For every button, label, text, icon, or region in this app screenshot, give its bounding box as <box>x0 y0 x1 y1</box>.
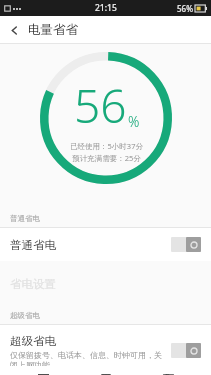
button[interactable]: Toggle <box>171 237 201 252</box>
staticText: 普通省电 <box>10 238 56 252</box>
staticText: 超级省电 <box>10 311 40 320</box>
staticText: 56 <box>74 74 127 137</box>
button[interactable]: Toggle <box>171 343 201 358</box>
button[interactable]: Back <box>0 16 28 44</box>
staticText: 21:15 <box>95 2 117 14</box>
staticText: 仅保留拨号、电话本、信息、时钟可用，关闭上网功能 <box>10 350 163 366</box>
staticText: 56% <box>177 3 193 14</box>
staticText: 普通省电 <box>10 214 40 223</box>
staticText: 电量省省 <box>28 22 78 38</box>
button[interactable]: 超级省电 <box>0 325 211 375</box>
staticText: 省电设置 <box>10 277 56 291</box>
button[interactable]: 普通省电 <box>0 228 211 261</box>
staticText: % <box>128 112 140 131</box>
staticText: 已经使用：5小时37分 <box>70 141 143 151</box>
staticText: 预计充满需要：25分 <box>72 153 141 163</box>
staticText: 超级省电 <box>10 334 56 348</box>
button[interactable]: 省电设置 <box>0 271 211 297</box>
